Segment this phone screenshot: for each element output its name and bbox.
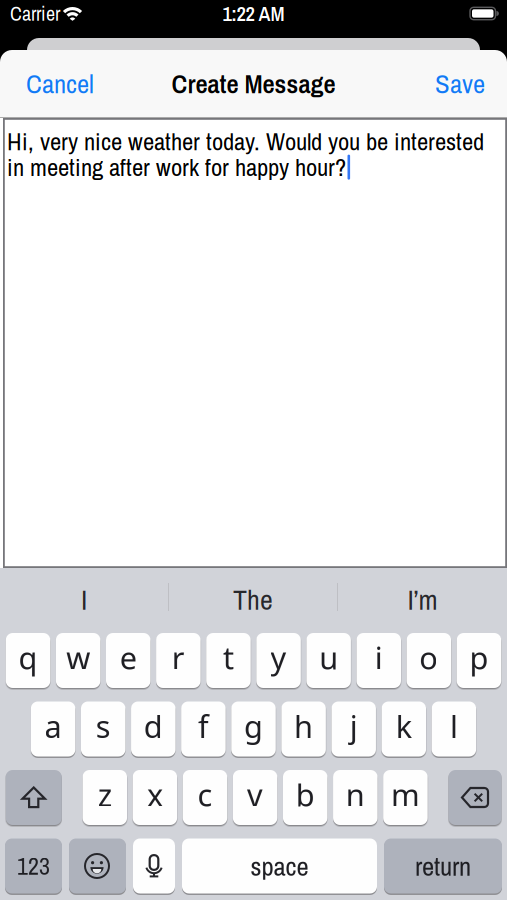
- button[interactable]: p: [457, 633, 501, 688]
- staticText: f: [198, 706, 209, 746]
- staticText: Hi, very nice weather today. Would you b…: [7, 125, 484, 158]
- button[interactable]: q: [6, 633, 50, 688]
- button[interactable]: return: [384, 838, 502, 893]
- staticText: s: [96, 706, 111, 746]
- staticText: 123: [17, 850, 50, 882]
- staticText: space: [250, 848, 308, 884]
- button[interactable]: z: [82, 770, 127, 825]
- staticText: b: [296, 774, 315, 815]
- button[interactable]: b: [283, 770, 327, 825]
- button[interactable]: Delete: [448, 770, 501, 825]
- button[interactable]: x: [133, 770, 177, 825]
- staticText: l: [450, 706, 458, 746]
- staticText: in meeting after work for happy hour?: [7, 150, 346, 184]
- staticText: y: [271, 637, 287, 678]
- button[interactable]: space: [182, 838, 377, 893]
- button[interactable]: h: [281, 701, 326, 756]
- button[interactable]: Shift: [6, 770, 62, 825]
- staticText: I: [81, 581, 87, 618]
- button[interactable]: t: [206, 633, 251, 688]
- staticText: u: [319, 637, 338, 678]
- staticText: a: [45, 706, 62, 746]
- button[interactable]: Save: [435, 65, 485, 101]
- staticText: h: [294, 706, 313, 746]
- button[interactable]: 123: [5, 838, 62, 893]
- staticText: n: [346, 774, 365, 815]
- button[interactable]: o: [407, 633, 451, 688]
- staticText: I’m: [407, 581, 437, 618]
- staticText: q: [19, 637, 38, 678]
- button[interactable]: v: [233, 770, 277, 825]
- button[interactable]: k: [382, 701, 426, 756]
- button[interactable]: w: [56, 633, 100, 688]
- button[interactable]: j: [331, 701, 376, 756]
- button[interactable]: I: [0, 568, 168, 626]
- staticText: g: [244, 706, 263, 746]
- staticText: j: [350, 706, 358, 746]
- button[interactable]: l: [432, 701, 476, 756]
- button[interactable]: c: [183, 770, 227, 825]
- button[interactable]: f: [181, 701, 226, 756]
- staticText: m: [391, 774, 420, 815]
- button[interactable]: y: [256, 633, 301, 688]
- staticText: d: [144, 706, 163, 746]
- button[interactable]: The: [169, 568, 337, 626]
- button[interactable]: n: [333, 770, 378, 825]
- button[interactable]: m: [383, 770, 428, 825]
- staticText: z: [98, 774, 112, 815]
- staticText: t: [223, 637, 234, 678]
- staticText: v: [247, 774, 263, 815]
- staticText: k: [396, 706, 412, 746]
- button[interactable]: e: [106, 633, 150, 688]
- button[interactable]: s: [81, 701, 125, 756]
- button[interactable]: Dictate: [133, 838, 175, 893]
- staticText: p: [469, 637, 488, 678]
- staticText: Create Message: [171, 65, 335, 101]
- staticText: return: [415, 848, 471, 884]
- button[interactable]: g: [231, 701, 276, 756]
- button[interactable]: I’m: [338, 568, 507, 626]
- button[interactable]: a: [31, 701, 75, 756]
- staticText: r: [172, 637, 185, 678]
- staticText: Carrier: [10, 0, 60, 27]
- staticText: Cancel: [26, 65, 94, 101]
- button[interactable]: i: [356, 633, 401, 688]
- staticText: x: [147, 774, 163, 815]
- staticText: Save: [435, 65, 485, 101]
- staticText: The: [233, 581, 273, 618]
- button[interactable]: r: [156, 633, 201, 688]
- button[interactable]: d: [131, 701, 176, 756]
- staticText: i: [375, 637, 383, 678]
- staticText: 1:22 AM: [222, 0, 284, 27]
- staticText: e: [120, 637, 137, 678]
- button[interactable]: u: [306, 633, 351, 688]
- staticText: w: [66, 637, 90, 678]
- button[interactable]: Emoji: [69, 838, 126, 893]
- staticText: o: [419, 637, 438, 678]
- staticText: c: [197, 774, 212, 815]
- button[interactable]: Cancel: [26, 65, 94, 101]
